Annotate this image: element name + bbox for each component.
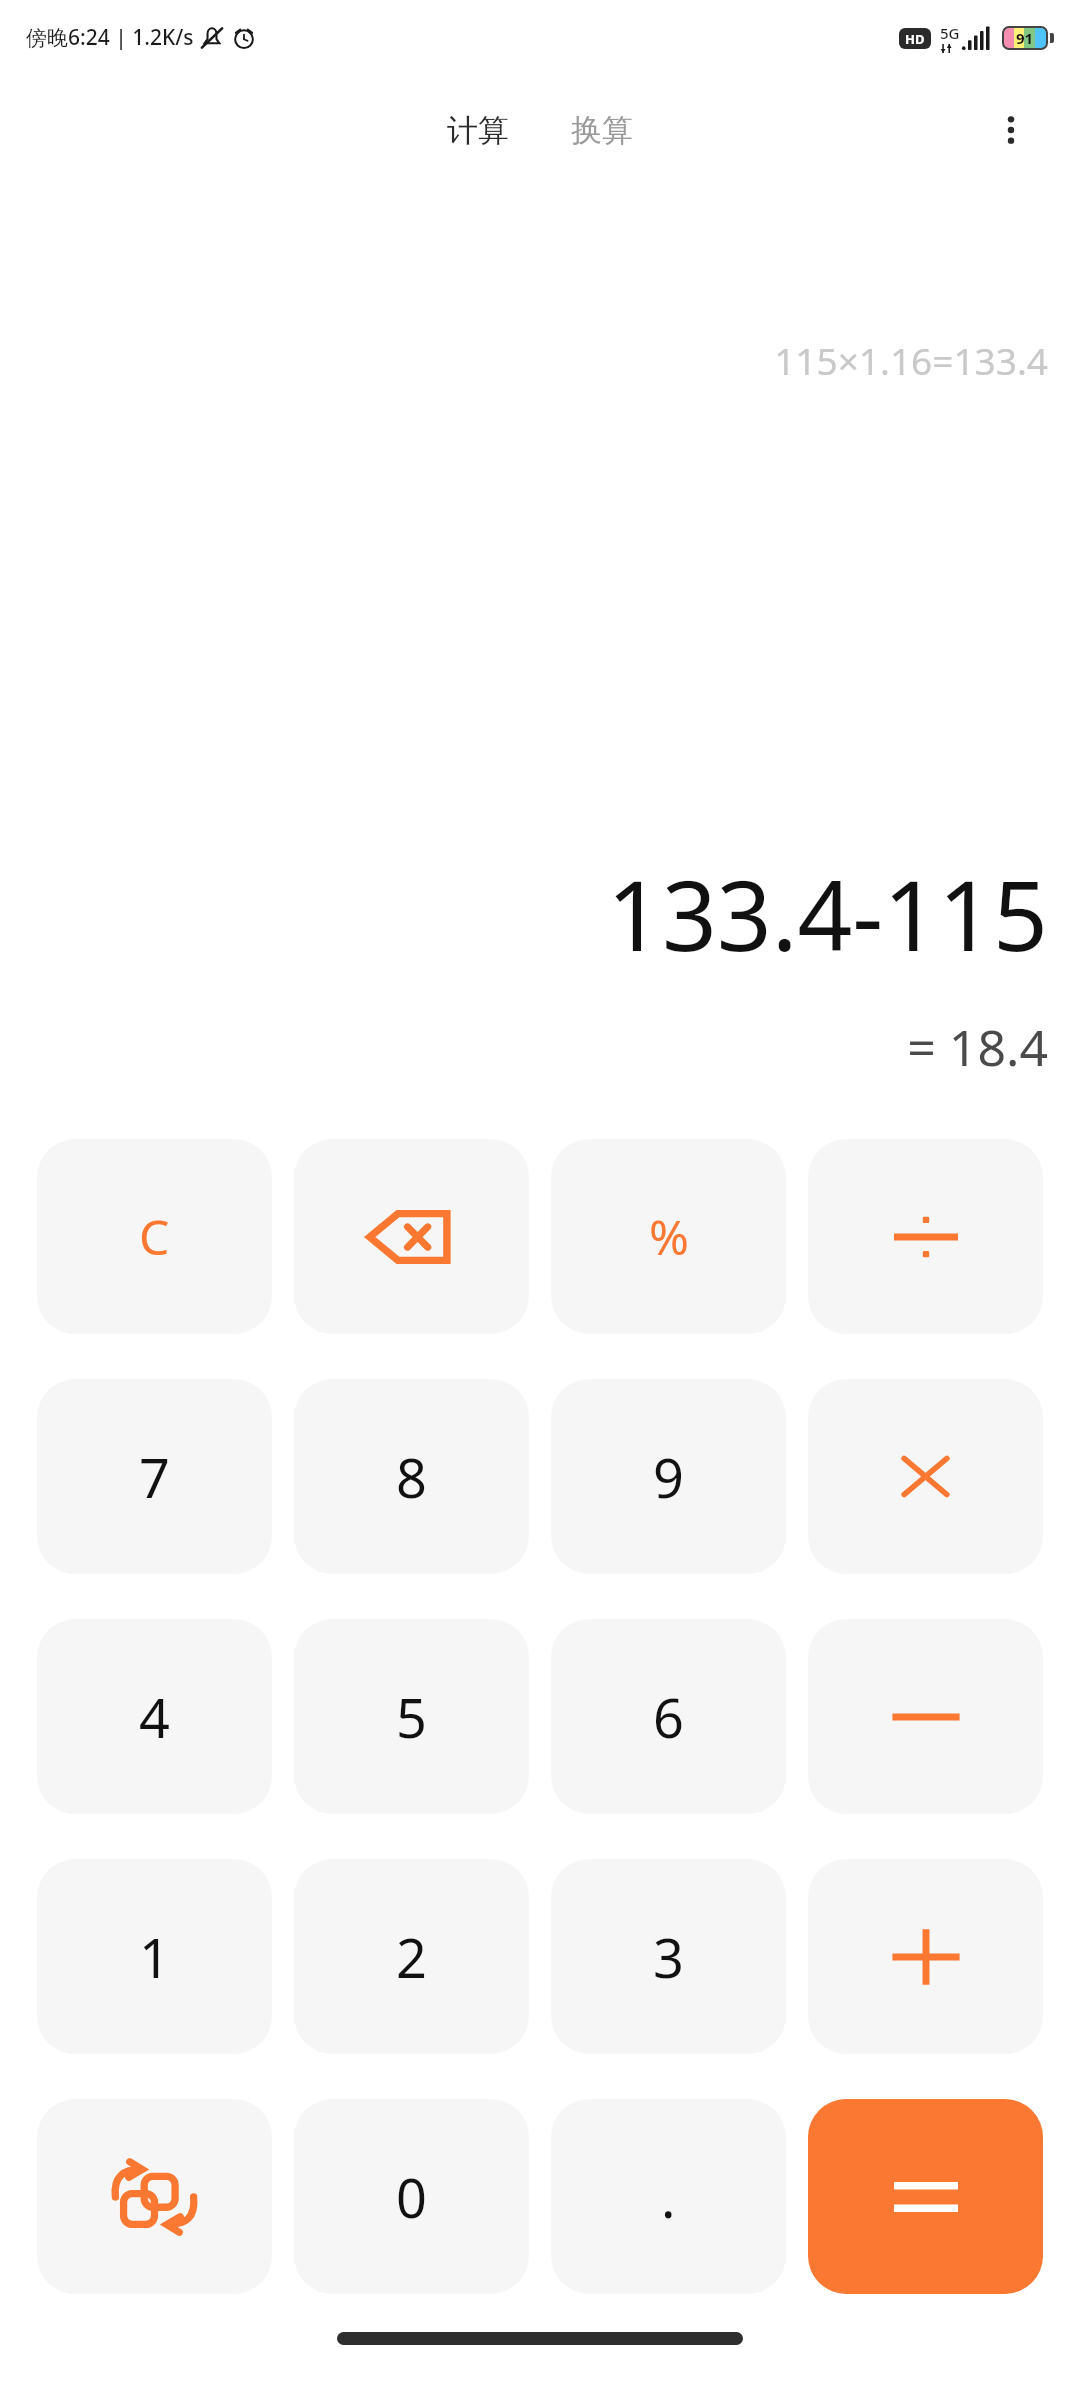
staticText: 6 [653,1680,684,1754]
button[interactable]: 换算 [561,105,643,156]
button[interactable]: Divide [808,1139,1043,1334]
staticText: 傍晚6:24 | 1.2K/s [26,23,194,52]
staticText: = 18.4 [907,1013,1048,1081]
button[interactable]: 8 [294,1379,529,1574]
staticText: 9 [653,1440,684,1514]
staticText: 7 [139,1440,170,1514]
button[interactable]: Percent [551,1139,786,1334]
button[interactable]: 7 [37,1379,272,1574]
staticText: 5 [396,1680,427,1754]
button[interactable]: More options [972,91,1050,169]
button[interactable]: Unit convert [37,2099,272,2294]
staticText: 1 [139,1920,170,1994]
staticText: 换算 [571,111,633,150]
button[interactable]: 5 [294,1619,529,1814]
staticText: 115×1.16=133.4 [774,335,1048,385]
button[interactable]: Backspace [294,1139,529,1334]
staticText: % [649,1204,689,1269]
staticText: . [661,2160,676,2234]
button[interactable]: Clear [37,1139,272,1334]
button[interactable]: 0 [294,2099,529,2294]
staticText: 2 [396,1920,427,1994]
staticText: 133.4-115 [606,848,1048,979]
button[interactable]: 9 [551,1379,786,1574]
button[interactable]: Decimal point [551,2099,786,2294]
button[interactable]: 计算 [437,105,519,156]
staticText: 5G [940,23,960,43]
staticText: 计算 [447,111,509,150]
button[interactable]: Plus [808,1859,1043,2054]
button[interactable]: Equals [808,2099,1043,2294]
button[interactable]: 3 [551,1859,786,2054]
button[interactable]: 2 [294,1859,529,2054]
staticText: 4 [139,1680,170,1754]
staticText: 0 [396,2160,427,2234]
button[interactable]: Multiply [808,1379,1043,1574]
button[interactable]: Minus [808,1619,1043,1814]
staticText: 91 [1016,28,1034,48]
button[interactable]: 1 [37,1859,272,2054]
staticText: 8 [396,1440,427,1514]
button[interactable]: 4 [37,1619,272,1814]
button[interactable]: 6 [551,1619,786,1814]
staticText: C [139,1204,170,1269]
staticText: 3 [653,1920,684,1994]
staticText: HD [905,30,925,48]
